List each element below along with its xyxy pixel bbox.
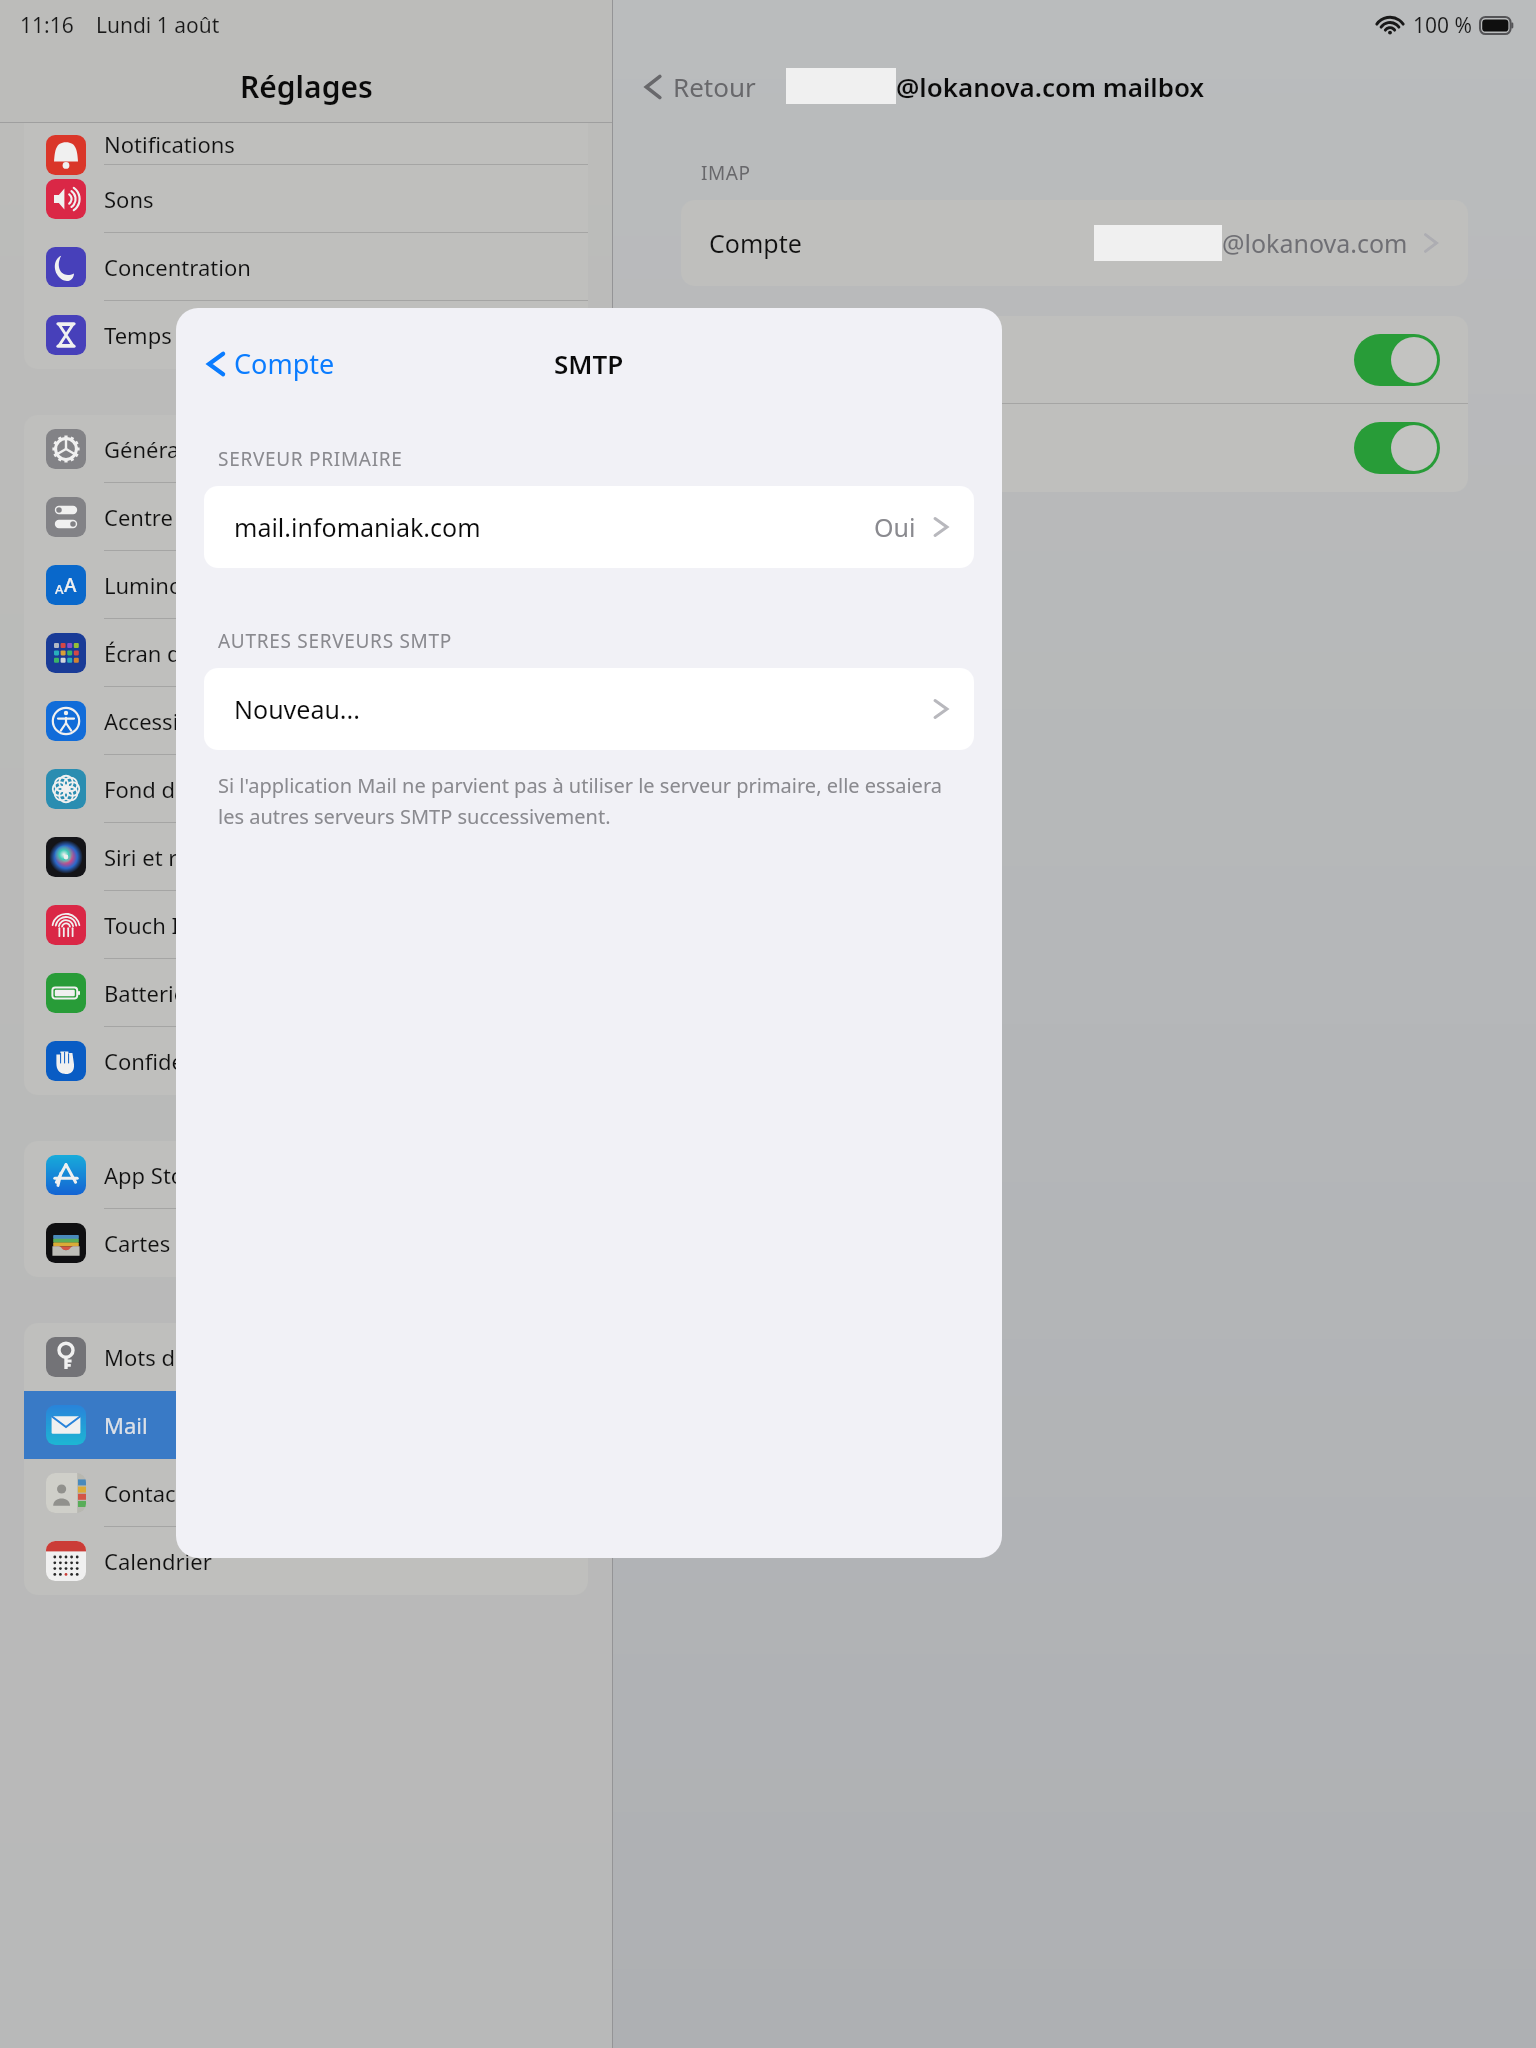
staticText: Sons [104, 184, 154, 214]
staticText: App Store [104, 1160, 206, 1190]
button[interactable]: Interrupteur activé [1354, 422, 1440, 474]
staticText: Lundi 1 août [96, 11, 220, 40]
button[interactable]: Temps d'écran [24, 301, 588, 369]
button[interactable]: Interrupteur activé [681, 316, 1468, 404]
staticText: Général [104, 434, 186, 464]
staticText: Réglages [240, 66, 373, 107]
staticText: 100 % [1413, 11, 1472, 40]
staticText: Cartes [104, 1228, 171, 1258]
button[interactable]: Nouveau... [204, 668, 974, 750]
button[interactable]: Touch ID [24, 891, 588, 959]
staticText: Temps d'écran [104, 320, 253, 350]
button[interactable]: Contacts [24, 1459, 588, 1527]
button[interactable]: Écran d'accueil [24, 619, 588, 687]
staticText: Fond d'écran [104, 774, 237, 804]
staticText: mail.infomaniak.com [234, 510, 481, 544]
staticText: @lokanova.com [1222, 226, 1408, 260]
staticText: Batterie [104, 978, 187, 1008]
button[interactable]: Concentration [24, 233, 588, 301]
button[interactable]: Mail [24, 1391, 588, 1459]
staticText: Mots de passe [104, 1342, 253, 1372]
staticText: Notifications [104, 129, 235, 159]
button[interactable]: Général [24, 415, 588, 483]
staticText: SMTP [554, 346, 624, 381]
staticText: SERVEUR PRIMAIRE [218, 446, 403, 472]
staticText: A [64, 572, 77, 598]
staticText: Confidentialité [104, 1046, 256, 1076]
button[interactable]: Confidentialité [24, 1027, 588, 1095]
staticText: Oui [874, 510, 916, 544]
button[interactable]: Centre de contrôle [24, 483, 588, 551]
staticText: Concentration [104, 252, 251, 282]
button[interactable]: Compte [681, 200, 1468, 286]
button[interactable]: Fond d'écran [24, 755, 588, 823]
staticText: Contacts [104, 1478, 195, 1508]
button[interactable]: Compte [198, 337, 341, 390]
staticText: 11:16 [20, 11, 74, 40]
staticText: Accessibilité [104, 706, 230, 736]
button[interactable]: A [24, 551, 588, 619]
staticText: Siri et recherche [104, 842, 272, 872]
button[interactable]: Sons [24, 165, 588, 233]
staticText: Compte [709, 226, 802, 260]
button[interactable]: Interrupteur activé [1354, 334, 1440, 386]
staticText: Écran d'accueil [104, 638, 256, 668]
button[interactable]: Accessibilité [24, 687, 588, 755]
button[interactable]: mail.infomaniak.com [204, 486, 974, 568]
staticText: Touch ID [104, 910, 195, 940]
button[interactable]: Retour [635, 69, 762, 104]
staticText: Nouveau... [234, 692, 360, 726]
button[interactable]: Interrupteur activé [681, 404, 1468, 492]
staticText: Luminosité [104, 570, 219, 600]
staticText: Calendrier [104, 1546, 212, 1576]
staticText: A [55, 580, 64, 598]
staticText: Retour [673, 69, 756, 104]
staticText: IMAP [701, 160, 751, 186]
staticText: Mail [104, 1410, 148, 1440]
button[interactable]: Cartes [24, 1209, 588, 1277]
button[interactable]: Mots de passe [24, 1323, 588, 1391]
button[interactable]: Siri et recherche [24, 823, 588, 891]
button[interactable]: App Store [24, 1141, 588, 1209]
staticText: @lokanova.com mailbox [896, 69, 1205, 104]
button[interactable]: Calendrier [24, 1527, 588, 1595]
staticText: Centre de contrôle [104, 502, 296, 532]
staticText: Si l'application Mail ne parvient pas à … [218, 772, 960, 829]
staticText: AUTRES SERVEURS SMTP [218, 628, 452, 654]
staticText: Compte [234, 345, 335, 382]
button[interactable]: Batterie [24, 959, 588, 1027]
